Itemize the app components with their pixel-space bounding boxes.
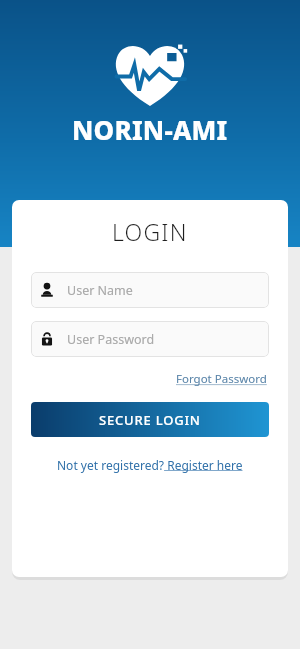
staticText: User Password [67, 331, 155, 348]
button[interactable]: SECURE LOGIN [31, 402, 269, 437]
other: User name [41, 283, 53, 297]
other: Norin-AMI logo [111, 42, 189, 106]
button[interactable]: User name [31, 272, 269, 308]
button[interactable]: Not yet registered? Register here [55, 455, 245, 475]
staticText: NORIN-AMI [72, 112, 228, 147]
staticText: User Name [67, 282, 133, 299]
staticText: Not yet registered? Register here [57, 457, 243, 473]
staticText: SECURE LOGIN [99, 411, 201, 429]
other: Password [41, 332, 53, 346]
staticText: Forgot Password [176, 371, 267, 387]
staticText: LOGIN [112, 216, 188, 247]
button[interactable]: Forgot Password [174, 369, 269, 389]
button[interactable]: Password [31, 321, 269, 357]
